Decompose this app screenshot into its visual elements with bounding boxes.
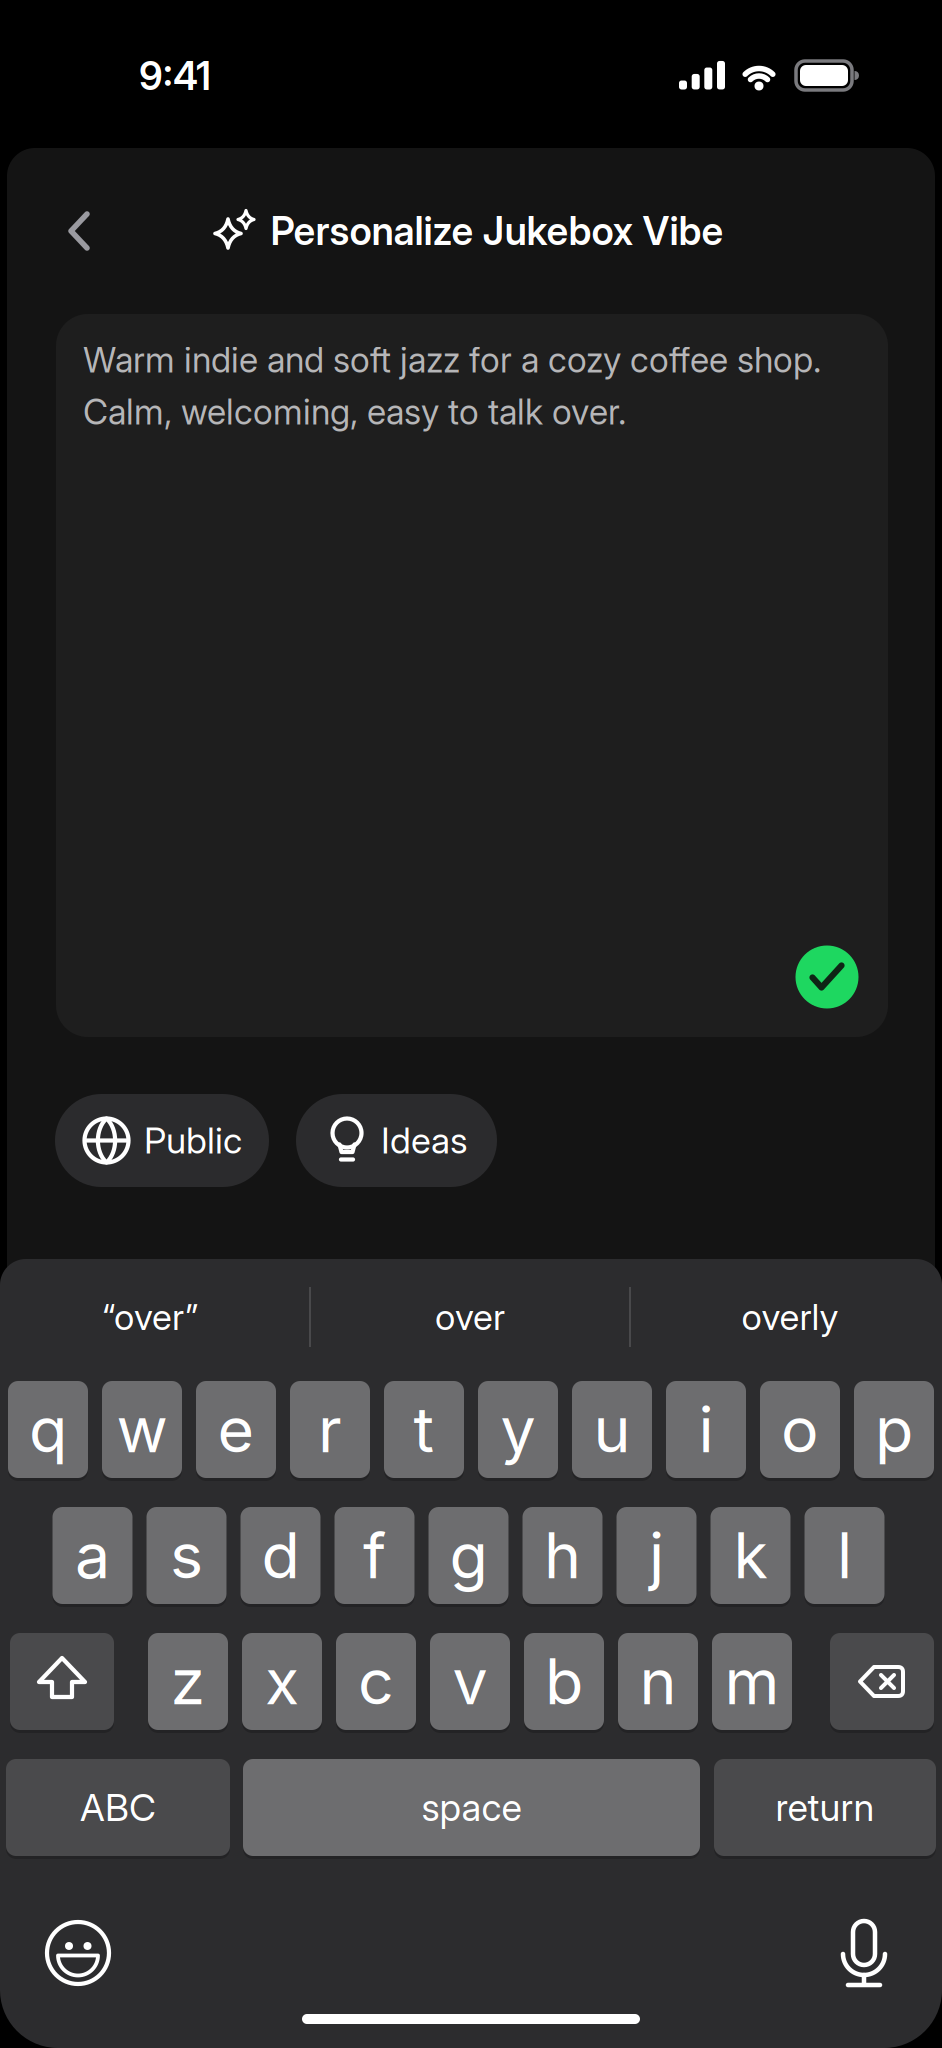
button[interactable]: v xyxy=(430,1633,510,1730)
button[interactable] xyxy=(43,1918,113,1988)
staticText: f xyxy=(363,1518,386,1592)
staticText: return xyxy=(775,1785,874,1829)
staticText: k xyxy=(733,1518,767,1592)
button[interactable]: Public xyxy=(55,1094,269,1187)
button[interactable]: overly xyxy=(640,1272,940,1362)
staticText: t xyxy=(413,1392,434,1466)
button[interactable]: l xyxy=(804,1507,884,1604)
staticText: y xyxy=(500,1392,535,1466)
button[interactable]: q xyxy=(8,1381,88,1478)
button[interactable]: n xyxy=(618,1633,698,1730)
button[interactable]: d xyxy=(240,1507,320,1604)
button[interactable]: c xyxy=(336,1633,416,1730)
staticText: “over” xyxy=(102,1296,198,1338)
button[interactable]: k xyxy=(710,1507,790,1604)
staticText: i xyxy=(698,1392,713,1466)
button[interactable]: z xyxy=(148,1633,228,1730)
staticText: o xyxy=(781,1392,819,1466)
button[interactable] xyxy=(829,1913,899,1993)
staticText: over xyxy=(435,1296,505,1338)
button[interactable]: w xyxy=(102,1381,182,1478)
staticText: 9:41 xyxy=(139,53,211,99)
button[interactable]: h xyxy=(522,1507,602,1604)
staticText: p xyxy=(875,1392,913,1466)
staticText: v xyxy=(452,1644,487,1718)
button[interactable]: x xyxy=(242,1633,322,1730)
staticText: w xyxy=(116,1392,167,1466)
button[interactable]: b xyxy=(524,1633,604,1730)
staticText: Public xyxy=(144,1119,242,1162)
staticText: space xyxy=(421,1785,521,1829)
staticText: g xyxy=(449,1518,487,1592)
staticText: b xyxy=(545,1644,583,1718)
staticText: Calm, welcoming, easy to talk over. xyxy=(83,392,626,432)
button[interactable]: t xyxy=(384,1381,464,1478)
button[interactable]: r xyxy=(290,1381,370,1478)
button[interactable]: m xyxy=(712,1633,792,1730)
button[interactable] xyxy=(50,201,110,261)
staticText: Personalize Jukebox Vibe xyxy=(270,208,723,254)
staticText: Ideas xyxy=(381,1119,468,1162)
staticText: q xyxy=(29,1392,67,1466)
staticText: n xyxy=(639,1644,676,1718)
staticText: m xyxy=(724,1644,779,1718)
staticText: Warm indie and soft jazz for a cozy coff… xyxy=(83,340,821,380)
staticText: z xyxy=(170,1644,205,1718)
button[interactable] xyxy=(10,1633,114,1730)
button[interactable]: a xyxy=(52,1507,132,1604)
button[interactable]: “over” xyxy=(0,1272,300,1362)
staticText: c xyxy=(358,1644,394,1718)
button[interactable]: Ideas xyxy=(296,1094,497,1187)
button[interactable]: i xyxy=(666,1381,746,1478)
button[interactable]: return xyxy=(714,1759,936,1856)
staticText: s xyxy=(170,1518,203,1592)
button[interactable]: over xyxy=(320,1272,620,1362)
button[interactable]: p xyxy=(854,1381,934,1478)
button[interactable] xyxy=(795,945,858,1008)
button[interactable]: f xyxy=(334,1507,414,1604)
button[interactable]: o xyxy=(760,1381,840,1478)
button[interactable] xyxy=(830,1633,934,1730)
staticText: overly xyxy=(741,1296,838,1338)
button[interactable]: j xyxy=(616,1507,696,1604)
staticText: d xyxy=(261,1518,299,1592)
button[interactable]: y xyxy=(478,1381,558,1478)
staticText: h xyxy=(544,1518,581,1592)
staticText: ABC xyxy=(80,1785,156,1829)
button[interactable]: ABC xyxy=(6,1759,230,1856)
staticText: r xyxy=(318,1392,342,1466)
staticText: l xyxy=(837,1518,852,1592)
button[interactable]: u xyxy=(572,1381,652,1478)
staticText: e xyxy=(217,1392,254,1466)
button[interactable]: space xyxy=(243,1759,700,1856)
staticText: a xyxy=(75,1518,110,1592)
staticText: j xyxy=(649,1518,664,1592)
button[interactable]: e xyxy=(196,1381,276,1478)
button[interactable]: g xyxy=(428,1507,508,1604)
staticText: u xyxy=(593,1392,630,1466)
staticText: x xyxy=(265,1644,299,1718)
button[interactable]: s xyxy=(146,1507,226,1604)
